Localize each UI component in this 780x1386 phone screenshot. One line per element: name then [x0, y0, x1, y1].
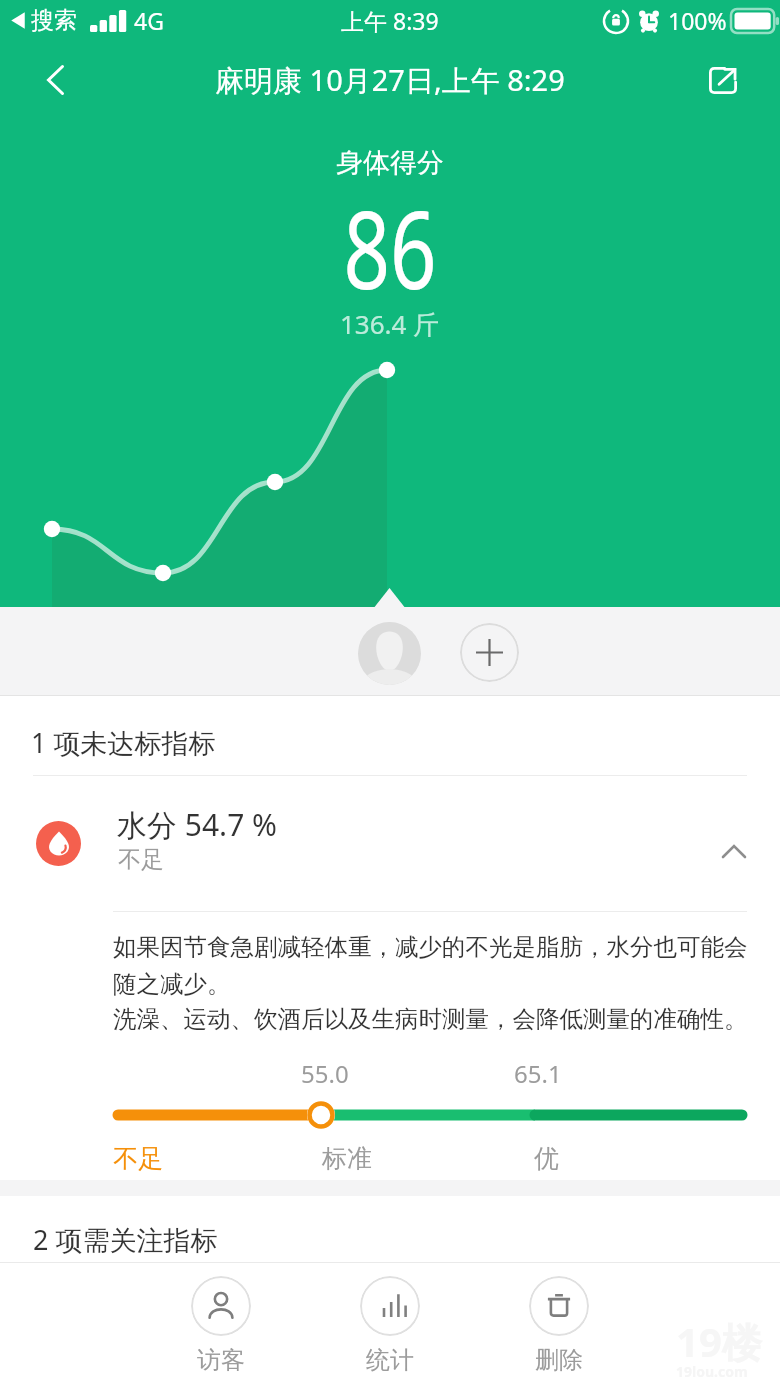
button[interactable]: 水分 54.7 % [0, 776, 780, 911]
staticText: 优 [534, 1143, 559, 1174]
staticText: 身体得分 [336, 146, 444, 180]
staticText: 不足 [113, 1143, 163, 1174]
staticText: 统计 [366, 1345, 414, 1375]
staticText: 19lou.com [676, 1362, 748, 1381]
button[interactable]: 删除 [507, 1276, 611, 1375]
staticText: 访客 [197, 1345, 245, 1375]
button[interactable]: Collapse [700, 817, 768, 885]
staticText: 删除 [535, 1345, 583, 1375]
staticText: 水分 54.7 % [117, 804, 278, 845]
staticText: 上午 8:39 [341, 5, 439, 36]
staticText: 标准 [322, 1143, 372, 1174]
button[interactable]: Add member [460, 623, 519, 682]
staticText: 如果因节食急剧减轻体重，减少的不光是脂肪，水分也可能会随之减少。 [113, 932, 766, 999]
staticText: 136.4 斤 [340, 306, 440, 342]
button[interactable]: 1 项未达标指标 [0, 714, 780, 774]
staticText: 65.1 [514, 1057, 562, 1090]
button[interactable]: 访客 [169, 1276, 273, 1375]
button[interactable]: 2 项需关注指标 [0, 1204, 780, 1264]
staticText: 19楼 [676, 1314, 762, 1369]
staticText: 麻明康 10月27日,上午 8:29 [215, 60, 565, 100]
staticText: 86 [343, 173, 437, 320]
staticText: 55.0 [301, 1057, 349, 1090]
button[interactable]: User avatar [358, 622, 421, 685]
staticText: 不足 [118, 845, 164, 874]
staticText: 1 项未达标指标 [31, 724, 216, 761]
staticText: 4G [134, 5, 164, 36]
button[interactable]: Back [19, 44, 91, 116]
staticText: 搜索 [31, 6, 77, 35]
staticText: 100% [668, 5, 727, 36]
staticText: 2 项需关注指标 [33, 1221, 218, 1258]
button[interactable]: Share [687, 44, 759, 116]
staticText: 洗澡、运动、饮酒后以及生病时测量，会降低测量的准确性。 [113, 1004, 748, 1034]
button[interactable]: 统计 [338, 1276, 442, 1375]
